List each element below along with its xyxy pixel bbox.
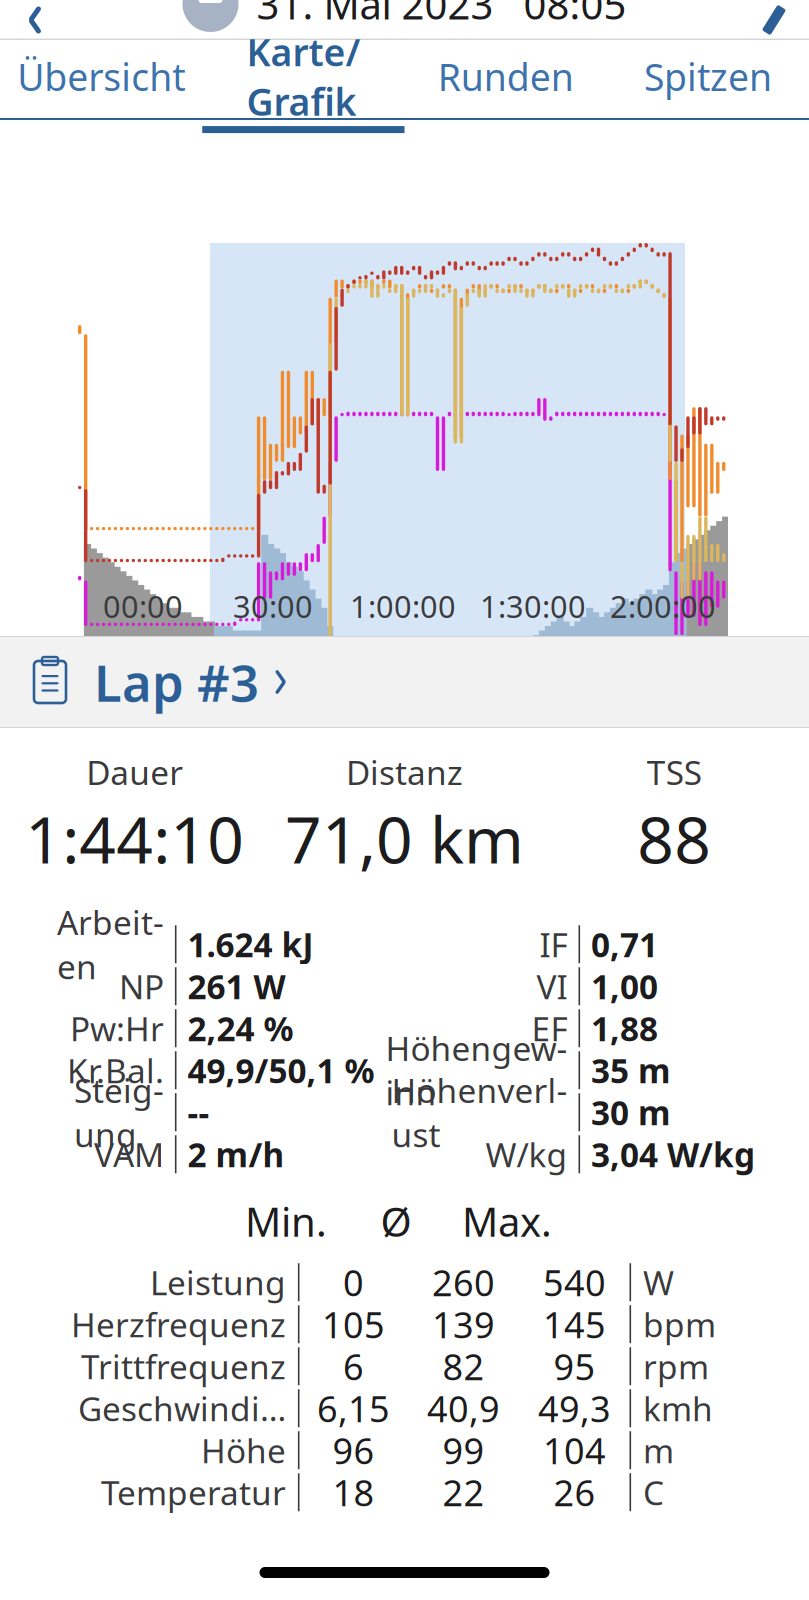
staticText: Max. xyxy=(462,1195,552,1248)
button[interactable]: Runden xyxy=(404,40,607,120)
staticText: Karte/Grafik xyxy=(246,27,360,126)
button[interactable]: Karte/Grafik xyxy=(202,40,404,120)
staticText: 95 xyxy=(553,1342,595,1390)
staticText: Min. xyxy=(245,1195,327,1248)
staticText: 145 xyxy=(543,1300,606,1348)
staticText: W xyxy=(643,1260,674,1304)
button[interactable]: Lap #3 xyxy=(0,636,809,728)
staticText: 540 xyxy=(543,1258,606,1306)
staticText: Geschwindi… xyxy=(78,1386,286,1430)
staticText: 31. Mai 2023 08:05 xyxy=(256,0,626,30)
staticText: 99 xyxy=(442,1426,484,1474)
staticText: Spitzen xyxy=(644,52,772,101)
staticText: Pw:Hr xyxy=(70,1006,164,1050)
staticText: 1,00 xyxy=(591,964,658,1008)
staticText: 18 xyxy=(332,1468,374,1516)
staticText: Steigung xyxy=(74,1068,164,1156)
staticText: 3,04 W/kg xyxy=(591,1132,755,1176)
staticText: 139 xyxy=(432,1300,495,1348)
staticText: 104 xyxy=(543,1426,606,1474)
staticText: 30 m xyxy=(591,1090,671,1134)
staticText: 260 xyxy=(432,1258,495,1306)
staticText: 40,9 xyxy=(427,1384,500,1432)
staticText: 96 xyxy=(332,1426,374,1474)
staticText: 1:44:10 xyxy=(25,796,244,881)
staticText: Höhenverlust xyxy=(391,1068,567,1156)
staticText: rpm xyxy=(643,1344,709,1388)
staticText: 35 m xyxy=(591,1048,671,1092)
staticText: 00:00 xyxy=(103,586,183,626)
button[interactable]: Back xyxy=(0,0,70,40)
staticText: Leistung xyxy=(150,1260,286,1304)
staticText: kmh xyxy=(643,1386,713,1430)
button[interactable]: Edit xyxy=(739,0,809,40)
staticText: Kr.Bal. xyxy=(67,1048,164,1092)
staticText: 49,3 xyxy=(538,1384,611,1432)
staticText: 2 m/h xyxy=(187,1132,284,1176)
staticText: 88 xyxy=(637,796,711,881)
staticText: 1:00:00 xyxy=(350,586,456,626)
staticText: 1:30:00 xyxy=(480,586,586,626)
staticText: Lap #3 xyxy=(94,648,259,716)
staticText: 49,9/50,1 % xyxy=(187,1048,374,1092)
staticText: 26 xyxy=(553,1468,595,1516)
staticText: -- xyxy=(187,1090,209,1134)
staticText: 0,71 xyxy=(591,922,658,966)
staticText: TSS xyxy=(647,750,702,794)
staticText: 30:00 xyxy=(233,586,313,626)
staticText: EF xyxy=(531,1006,567,1050)
staticText: 0 xyxy=(343,1258,364,1306)
staticText: 105 xyxy=(322,1300,385,1348)
staticText: Höhengewinn xyxy=(385,1026,567,1114)
button[interactable]: Übersicht xyxy=(0,40,202,120)
staticText: 2,24 % xyxy=(187,1006,293,1050)
staticText: m xyxy=(643,1428,674,1472)
button[interactable]: Spitzen xyxy=(607,40,809,120)
staticText: 22 xyxy=(442,1468,484,1516)
staticText: Runden xyxy=(438,52,574,101)
staticText: NP xyxy=(119,964,164,1008)
staticText: VAM xyxy=(94,1132,164,1176)
staticText: Herzfrequenz xyxy=(71,1302,286,1346)
staticText: 2:00:00 xyxy=(610,586,716,626)
staticText: 6,15 xyxy=(317,1384,390,1432)
staticText: 82 xyxy=(442,1342,484,1390)
staticText: 71,0 km xyxy=(285,796,524,881)
staticText: Trittfrequenz xyxy=(81,1344,286,1388)
staticText: Höhe xyxy=(201,1428,286,1472)
staticText: IF xyxy=(539,922,567,966)
staticText: 1.624 kJ xyxy=(187,922,313,966)
staticText: Temperatur xyxy=(101,1470,286,1514)
staticText: Arbeiten xyxy=(57,900,164,988)
staticText: Ø xyxy=(380,1195,411,1248)
staticText: Übersicht xyxy=(17,52,185,101)
staticText: Distanz xyxy=(346,750,463,794)
staticText: Dauer xyxy=(86,750,183,794)
staticText: 1,88 xyxy=(591,1006,658,1050)
staticText: W/kg xyxy=(485,1132,567,1176)
staticText: VI xyxy=(536,964,567,1008)
staticText: 6 xyxy=(343,1342,364,1390)
staticText: C xyxy=(643,1470,664,1514)
staticText: 261 W xyxy=(187,964,285,1008)
staticText: bpm xyxy=(643,1302,716,1346)
